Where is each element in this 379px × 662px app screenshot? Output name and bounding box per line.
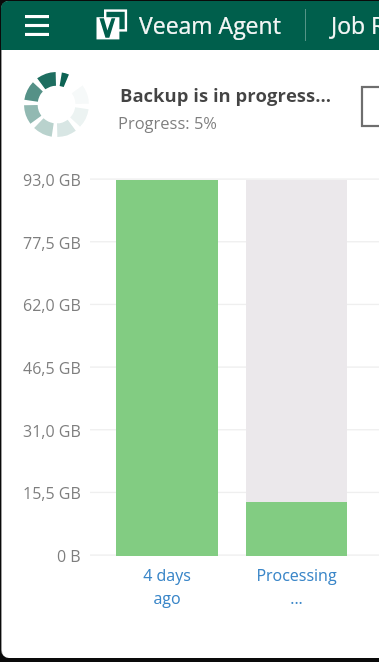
staticText: Backup is in progress... — [120, 82, 332, 107]
button[interactable]: Processing ... — [246, 564, 347, 609]
staticText: Progress: 5% — [118, 111, 217, 133]
staticText: Veeam Agent — [139, 9, 281, 40]
staticText: 93,0 GB — [23, 169, 81, 191]
staticText: Processing ... — [246, 564, 347, 609]
staticText: 62,0 GB — [23, 294, 81, 316]
staticText: Job R — [331, 9, 379, 40]
button[interactable]: Open navigation menu — [13, 3, 60, 47]
button[interactable]: Stop backup job — [362, 87, 379, 126]
staticText: 77,5 GB — [23, 232, 81, 254]
staticText: 15,5 GB — [23, 482, 81, 504]
staticText: 31,0 GB — [23, 420, 81, 442]
staticText: 0 B — [57, 545, 81, 567]
button[interactable]: 4 days ago — [116, 564, 218, 609]
staticText: 46,5 GB — [23, 357, 81, 379]
staticText: 4 days ago — [116, 564, 218, 609]
